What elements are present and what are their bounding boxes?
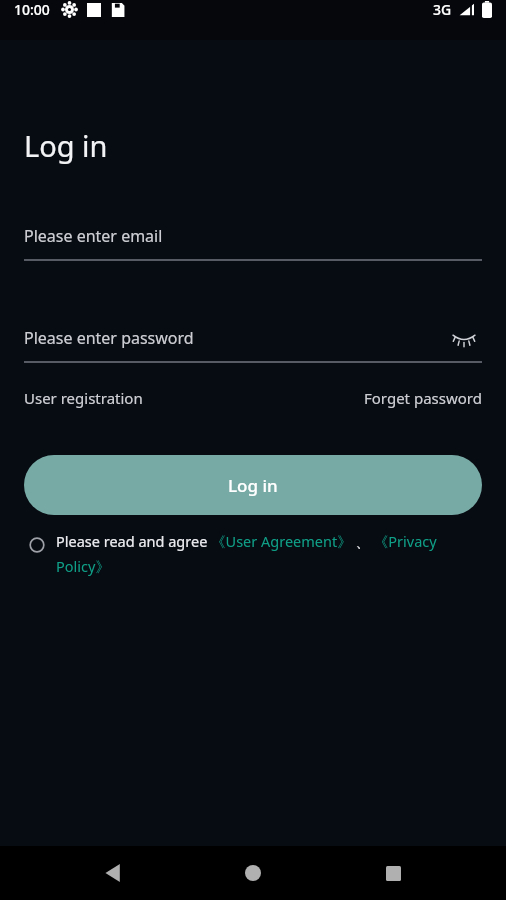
button[interactable]: Agree to terms	[24, 532, 50, 558]
staticText: Log in	[228, 474, 278, 497]
button[interactable]: Recent apps	[366, 846, 420, 900]
staticText: Please enter password	[24, 327, 194, 349]
button[interactable]: Please enter email	[24, 213, 482, 259]
button[interactable]: Home	[226, 846, 280, 900]
button[interactable]: User registration	[24, 383, 143, 413]
button[interactable]: Show password	[446, 320, 482, 356]
staticText: 3G	[433, 0, 452, 19]
button[interactable]: Forget password	[364, 383, 482, 413]
button[interactable]: Please enter password	[24, 315, 482, 361]
button[interactable]: Log in	[24, 455, 482, 515]
staticText: Please enter email	[24, 225, 163, 247]
button[interactable]: Back	[86, 846, 140, 900]
button[interactable]: Please read and agree 《User Agreement》 、…	[56, 531, 482, 576]
staticText: Log in	[24, 126, 108, 165]
staticText: User registration	[24, 388, 143, 408]
staticText: 10:00	[14, 0, 50, 19]
staticText: Forget password	[364, 388, 482, 408]
